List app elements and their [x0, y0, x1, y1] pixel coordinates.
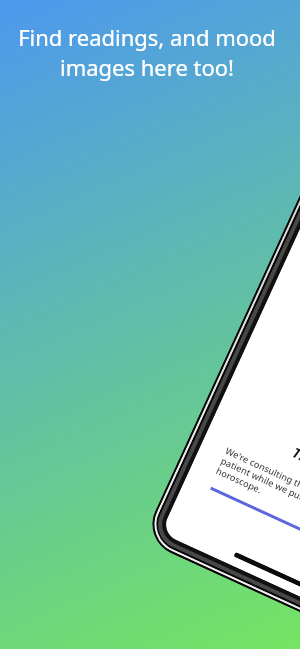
staticText: Find readings, and mood images here too! — [0, 22, 297, 82]
staticText: We're consulting the stars. Be patient w… — [214, 444, 300, 539]
staticText: The Stars — [213, 408, 300, 519]
